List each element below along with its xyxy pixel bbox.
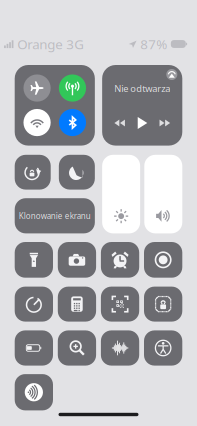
button[interactable]: AirPlay [166, 69, 178, 80]
button[interactable]: Code Scanner [101, 287, 139, 322]
button[interactable]: Klonowanie ekranu [15, 198, 95, 233]
button[interactable]: Screen Recording [144, 242, 182, 278]
button[interactable]: Timer [15, 287, 53, 322]
staticText: 87% [140, 35, 167, 53]
button[interactable]: Flashlight [15, 242, 53, 278]
button[interactable]: Volume [144, 155, 182, 233]
staticText: Orange 3G [17, 35, 84, 53]
staticText: Nie odtwarza [114, 82, 170, 95]
button[interactable]: Camera [58, 242, 96, 278]
button[interactable]: Do Not Disturb [59, 155, 95, 190]
button[interactable]: Low Power Mode [15, 330, 53, 366]
button[interactable]: Airplane Mode [23, 74, 51, 102]
button[interactable]: Rewind [114, 117, 125, 128]
button[interactable]: Accessibility [144, 330, 182, 366]
button[interactable]: Play [136, 117, 148, 129]
staticText: Klonowanie ekranu [19, 210, 91, 221]
button[interactable]: Calculator [58, 287, 96, 322]
button[interactable]: Cellular Data [59, 74, 86, 102]
button[interactable]: Sound Recognition [101, 330, 139, 366]
button[interactable]: Hearing [15, 374, 53, 410]
button[interactable]: Magnifier [58, 330, 96, 366]
button[interactable]: Rotation Lock [15, 155, 51, 190]
button[interactable]: Brightness [102, 155, 140, 233]
button[interactable]: Alarm [101, 242, 139, 278]
button[interactable]: Fast Forward [159, 117, 170, 128]
button[interactable]: Lock [144, 287, 182, 322]
button[interactable]: Bluetooth [59, 109, 86, 136]
button[interactable]: Wi-Fi [23, 109, 51, 136]
